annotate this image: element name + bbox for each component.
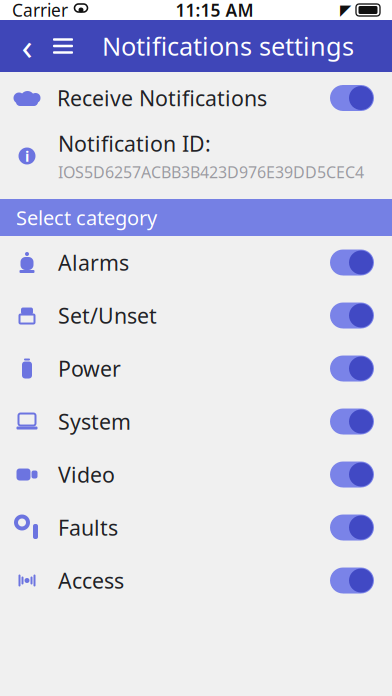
staticText: 11:15 AM	[175, 0, 253, 21]
staticText: Power	[58, 354, 121, 383]
button[interactable]: Toggle on	[330, 302, 374, 328]
staticText: Carrier	[12, 0, 68, 21]
button[interactable]: Video	[0, 448, 392, 501]
staticText: ‹	[21, 22, 32, 70]
button[interactable]: System	[0, 395, 392, 448]
button[interactable]: Set/Unset	[0, 289, 392, 342]
button[interactable]: Faults	[0, 501, 392, 554]
staticText: Notification ID:	[58, 129, 211, 157]
staticText: Video	[58, 460, 115, 489]
button[interactable]: Toggle on	[330, 249, 374, 275]
staticText: Set/Unset	[58, 301, 157, 330]
button[interactable]: Toggle on	[330, 408, 374, 434]
staticText: System	[58, 407, 131, 436]
button[interactable]: Toggle on	[330, 85, 374, 111]
staticText: IOS5D6257ACBB3B423D976E39DD5CEC4	[58, 161, 364, 183]
button[interactable]: Toggle on	[330, 461, 374, 487]
button[interactable]: Alarms	[0, 236, 392, 289]
staticText: Alarms	[58, 248, 129, 277]
staticText: Faults	[58, 513, 118, 542]
button[interactable]: Toggle on	[330, 567, 374, 593]
staticText: Access	[58, 566, 124, 595]
button[interactable]: Power	[0, 342, 392, 395]
button[interactable]: Toggle on	[330, 355, 374, 381]
staticText: Receive Notifications	[57, 84, 267, 112]
button[interactable]: Access	[0, 554, 392, 607]
staticText: i	[25, 146, 29, 166]
button[interactable]: Receive Notifications	[0, 72, 392, 124]
button[interactable]: Menu	[46, 26, 80, 66]
button[interactable]: Toggle on	[330, 514, 374, 540]
button[interactable]: Back	[12, 26, 42, 66]
staticText: ◤	[340, 2, 351, 18]
staticText: Notifications settings	[102, 29, 354, 63]
staticText: Select category	[16, 204, 157, 231]
